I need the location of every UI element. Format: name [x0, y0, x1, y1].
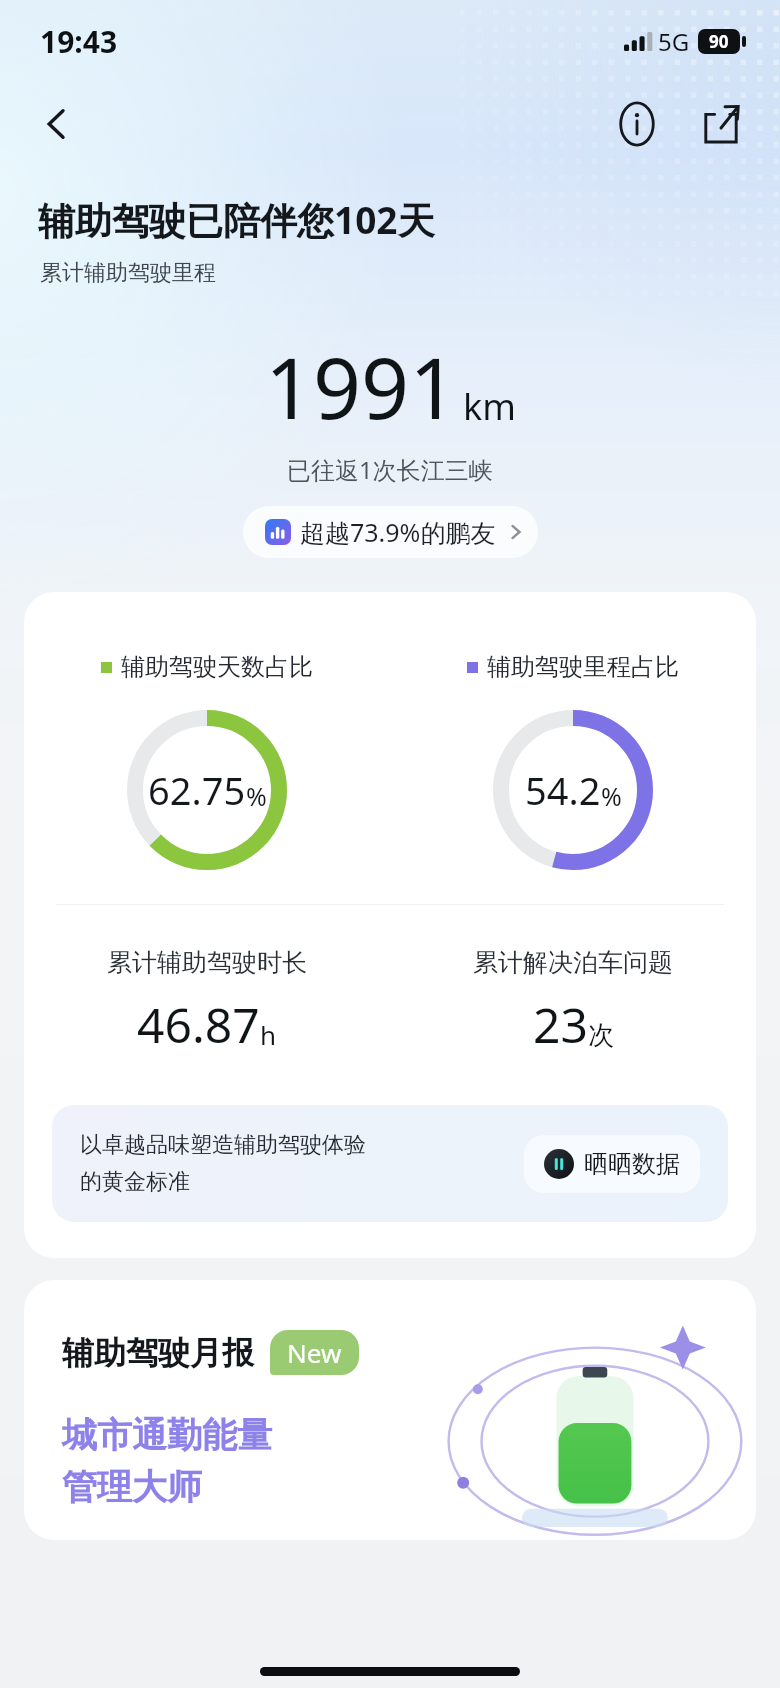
staticText: km: [463, 382, 516, 431]
staticText: 累计解决泊车问题: [473, 947, 673, 978]
staticText: 19:43: [40, 21, 118, 62]
staticText: 晒晒数据: [584, 1149, 680, 1179]
button[interactable]: Back: [22, 89, 92, 159]
staticText: 累计辅助驾驶里程: [40, 259, 216, 287]
staticText: 城市通勤能量: [62, 1413, 272, 1457]
staticText: 次: [588, 1019, 614, 1052]
button[interactable]: Info: [604, 91, 670, 157]
staticText: 62.75: [148, 764, 246, 816]
staticText: 已往返1次长江三峡: [287, 453, 493, 486]
button[interactable]: Share: [688, 91, 754, 157]
button[interactable]: 超越73.9%的鹏友: [243, 506, 538, 558]
button[interactable]: 晒晒数据: [524, 1135, 700, 1193]
staticText: %: [601, 779, 622, 813]
staticText: 23: [533, 992, 588, 1057]
staticText: 以卓越品味塑造辅助驾驶体验: [80, 1131, 366, 1159]
staticText: 辅助驾驶月报: [62, 1333, 254, 1373]
staticText: h: [260, 1017, 277, 1052]
staticText: 5G: [658, 25, 690, 58]
staticText: 辅助驾驶里程占比: [487, 652, 679, 682]
staticText: 90: [709, 30, 729, 53]
staticText: 54.2: [525, 764, 601, 816]
staticText: 的黄金标准: [80, 1168, 190, 1196]
staticText: 累计辅助驾驶时长: [107, 947, 307, 978]
button[interactable]: 辅助驾驶月报: [24, 1280, 756, 1540]
staticText: 46.87: [137, 992, 260, 1057]
staticText: 超越73.9%的鹏友: [300, 515, 496, 549]
staticText: 辅助驾驶已陪伴您102天: [38, 194, 435, 245]
staticText: 管理大师: [62, 1465, 202, 1509]
staticText: New: [287, 1335, 342, 1370]
staticText: %: [246, 779, 267, 813]
staticText: 辅助驾驶天数占比: [121, 652, 313, 682]
staticText: 1991: [265, 329, 458, 443]
